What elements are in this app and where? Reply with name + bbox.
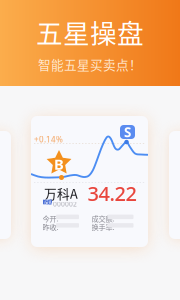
staticText: 智能五星买卖点！ — [38, 55, 142, 73]
staticText: 000002 — [53, 199, 77, 208]
staticText: B — [54, 154, 64, 174]
staticText: 深A — [43, 198, 51, 206]
staticText: 今开: — [42, 213, 58, 224]
button[interactable]: +0.14% — [31, 116, 148, 247]
staticText: 五星操盘 — [36, 12, 144, 51]
staticText: S — [124, 123, 131, 141]
staticText: 万科A — [44, 184, 78, 202]
staticText: 换手率: — [91, 222, 114, 232]
staticText: 34.22 — [87, 180, 136, 207]
staticText: +0.14% — [34, 134, 63, 145]
staticText: 昨收: — [42, 222, 58, 232]
staticText: 成交额: — [91, 213, 114, 224]
